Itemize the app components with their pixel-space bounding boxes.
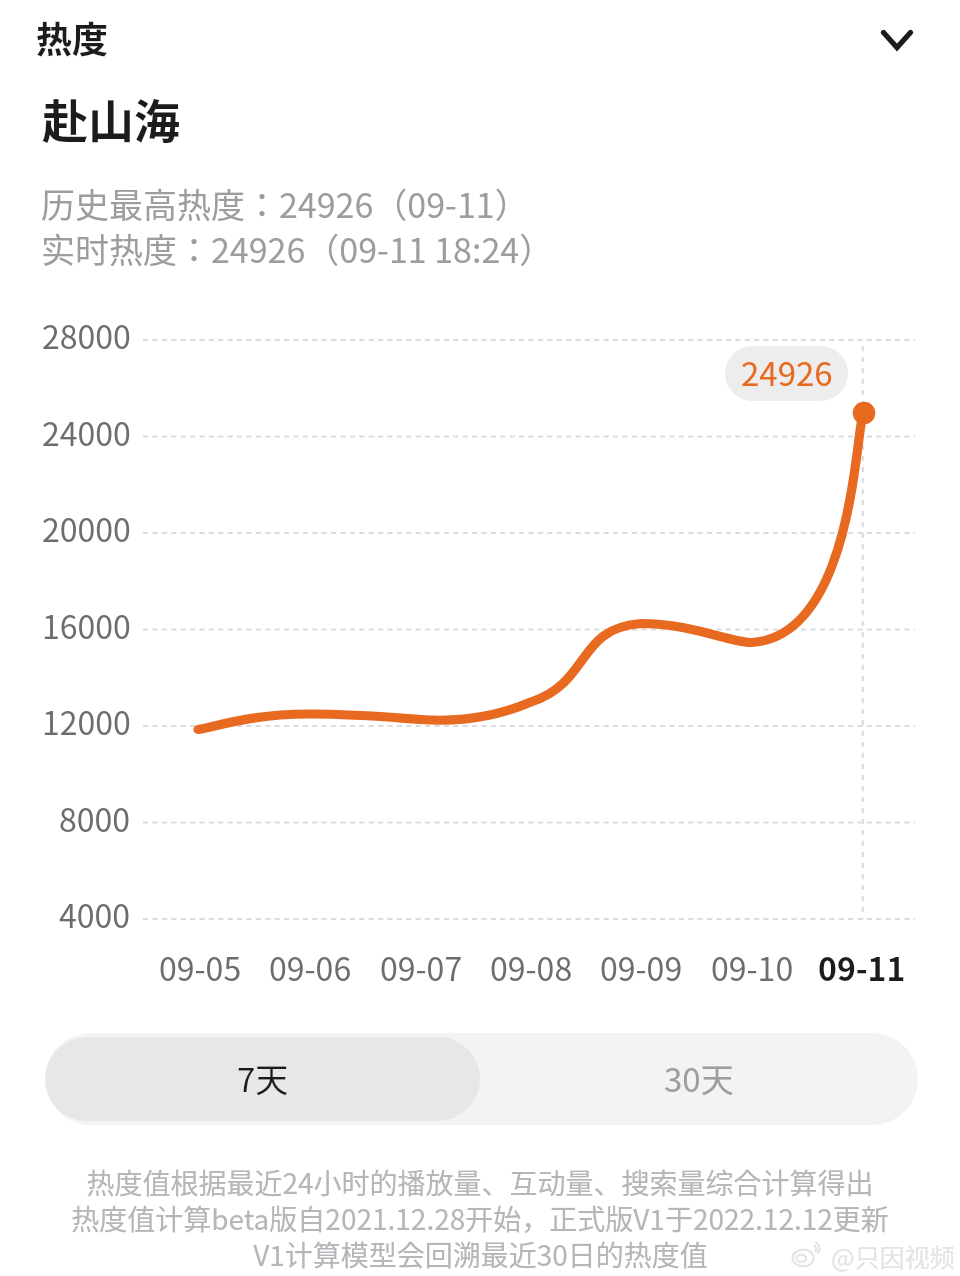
staticText: 09-09 — [600, 944, 683, 990]
staticText: 09-06 — [269, 944, 352, 990]
staticText: 12000 — [42, 698, 131, 742]
staticText: 8000 — [59, 795, 131, 839]
staticText: 24926 — [741, 348, 833, 396]
staticText: 30天 — [664, 1054, 734, 1102]
staticText: 7天 — [237, 1054, 289, 1102]
staticText: @只因视频 — [831, 1238, 955, 1274]
staticText: 24000 — [42, 409, 131, 453]
staticText: 20000 — [42, 505, 131, 549]
button[interactable]: Collapse — [861, 4, 933, 76]
staticText: 热度 — [36, 11, 109, 63]
staticText: 09-08 — [490, 944, 573, 990]
button[interactable]: 30天 — [480, 1037, 918, 1121]
staticText: 热度值根据最近24小时的播放量、互动量、搜索量综合计算得出 — [86, 1162, 874, 1203]
staticText: 实时热度：24926（09-11 18:24） — [41, 224, 554, 273]
staticText: 历史最高热度：24926（09-11） — [41, 179, 529, 228]
staticText: 28000 — [42, 312, 131, 356]
staticText: 09-05 — [159, 944, 242, 990]
staticText: 09-11 — [818, 944, 906, 990]
staticText: 09-07 — [380, 944, 463, 990]
staticText: 16000 — [42, 602, 131, 646]
staticText: 热度值计算beta版自2021.12.28开始，正式版V1于2022.12.12… — [71, 1198, 889, 1239]
staticText: V1计算模型会回溯最近30日的热度值 — [253, 1234, 708, 1275]
button[interactable]: 7天 — [45, 1037, 480, 1121]
staticText: 09-10 — [711, 944, 794, 990]
staticText: 4000 — [59, 891, 131, 935]
staticText: 赴山海 — [42, 85, 180, 152]
